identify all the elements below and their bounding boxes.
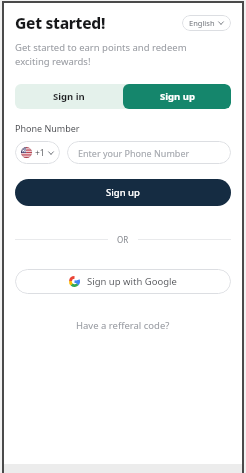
- staticText: Get started to earn points and redeem ex…: [15, 41, 187, 68]
- button[interactable]: Have a refferal code?: [70, 316, 176, 335]
- staticText: Sign in: [53, 90, 85, 103]
- staticText: Sign up: [106, 186, 140, 199]
- staticText: OR: [117, 234, 129, 245]
- staticText: Get started!: [15, 12, 106, 33]
- staticText: +1: [35, 147, 45, 159]
- button[interactable]: +1: [15, 141, 60, 164]
- staticText: Have a refferal code?: [76, 319, 170, 332]
- button[interactable]: Sign up: [15, 179, 231, 206]
- staticText: Enter your Phone Number: [78, 147, 190, 159]
- button[interactable]: English: [182, 15, 231, 31]
- staticText: Phone Number: [15, 122, 80, 134]
- staticText: Sign up: [160, 90, 195, 103]
- button[interactable]: Sign up: [123, 84, 231, 109]
- button[interactable]: Enter your Phone Number: [67, 141, 231, 164]
- button[interactable]: Sign in: [15, 84, 123, 109]
- staticText: Sign up with Google: [87, 275, 177, 288]
- button[interactable]: Sign up with Google: [15, 269, 231, 294]
- staticText: English: [189, 18, 215, 28]
